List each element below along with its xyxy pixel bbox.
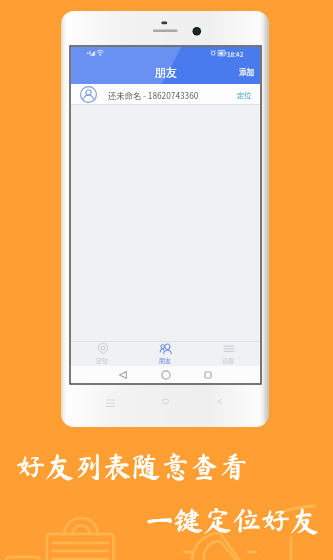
button[interactable]: Home xyxy=(160,396,171,407)
button[interactable]: Menu xyxy=(105,396,116,407)
button[interactable]: Recent apps xyxy=(202,369,214,381)
staticText: 设置 xyxy=(222,356,235,365)
staticText: 还未命名 - 18620743360 xyxy=(108,89,199,101)
button[interactable]: 还未命名 - 18620743360 xyxy=(71,84,260,105)
staticText: 好友列表随意查看 xyxy=(16,451,249,480)
button[interactable]: Back xyxy=(117,369,129,381)
button[interactable]: Home xyxy=(160,369,172,381)
staticText: 18:42 xyxy=(227,49,244,58)
button[interactable]: 设置 xyxy=(197,341,260,366)
staticText: 朋友 xyxy=(159,356,172,365)
staticText: 朋友 xyxy=(155,64,177,80)
button[interactable]: 定位 xyxy=(236,86,252,104)
staticText: 定位 xyxy=(237,90,252,100)
button[interactable]: Back xyxy=(214,396,225,407)
button[interactable]: 朋友 xyxy=(134,341,197,366)
staticText: 一键定位好友 xyxy=(145,505,320,534)
button[interactable]: 定位 xyxy=(71,341,134,366)
staticText: 定位 xyxy=(96,356,109,365)
button[interactable]: 添加 xyxy=(233,61,260,82)
staticText: 添加 xyxy=(239,66,254,77)
